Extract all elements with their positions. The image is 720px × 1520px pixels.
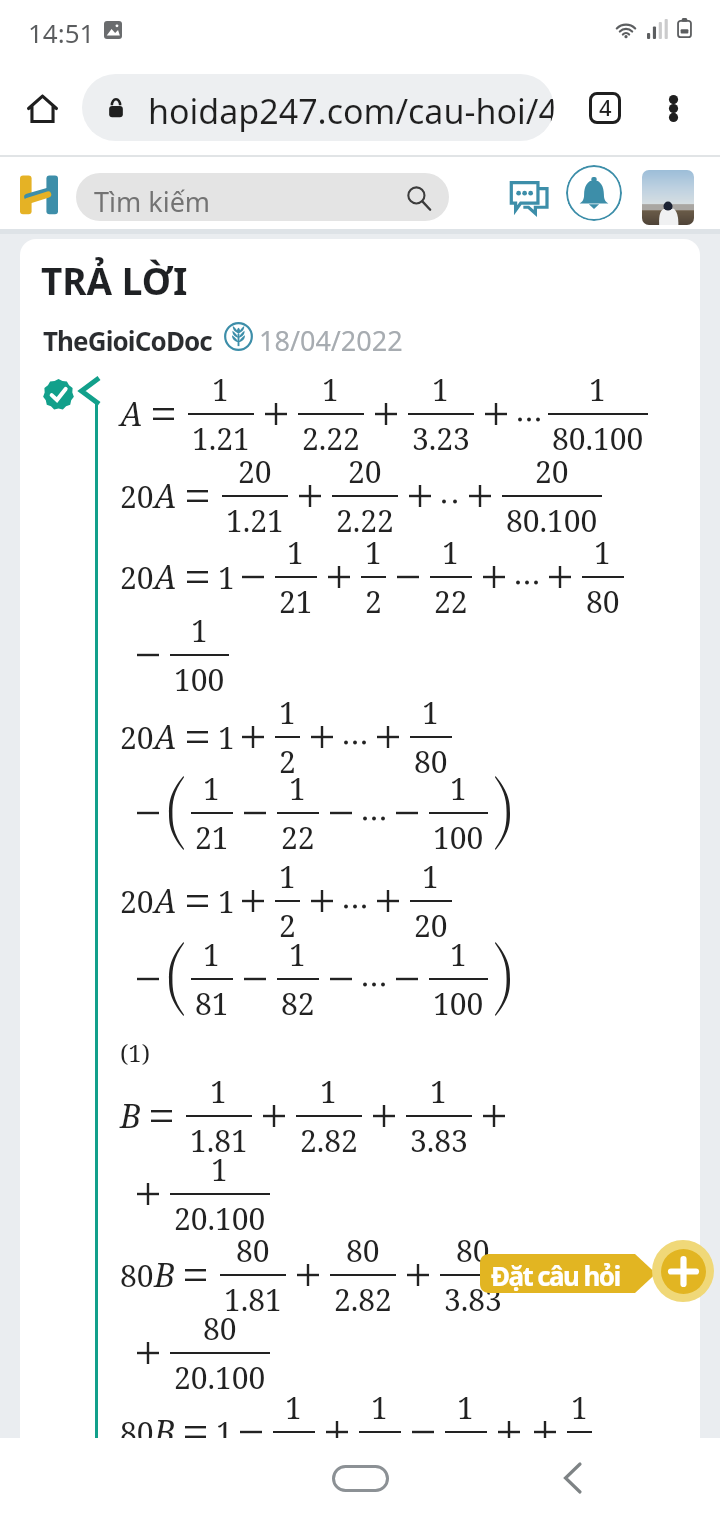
staticText: 1 (430, 1071, 447, 1112)
staticText: 1 (218, 717, 235, 758)
staticText: 100 (433, 983, 484, 1024)
staticText: TRẢ LỜI (41, 255, 188, 305)
staticText: 1 (289, 934, 306, 975)
staticText: 80.100 (552, 418, 644, 459)
staticText: 1.21 (192, 418, 250, 459)
staticText: 20.100 (174, 1357, 266, 1398)
button[interactable]: Ask a question (652, 1240, 714, 1302)
staticText: 82 (281, 983, 315, 1024)
staticText: 100 (433, 817, 484, 858)
staticText: 2 (365, 581, 382, 622)
staticText: 1 (218, 557, 235, 598)
button[interactable]: Hoidap247 home (20, 173, 58, 216)
staticText: 80 (456, 1230, 490, 1271)
staticText: 4 (599, 92, 612, 122)
staticText: 20 (120, 476, 154, 517)
staticText: 80 (414, 741, 448, 782)
button[interactable]: hoidap247.com/cau-hoi/4 (82, 74, 554, 141)
staticText: 21 (279, 581, 313, 622)
staticText: 80 (120, 1255, 154, 1296)
staticText: 2 (279, 741, 296, 782)
staticText: 20.100 (174, 1198, 266, 1239)
staticText: 18/04/2022 (259, 322, 403, 359)
staticText: 80 (120, 1412, 154, 1453)
staticText: 14:51 (28, 15, 95, 50)
staticText: 20 (120, 557, 154, 598)
staticText: 3.83 (410, 1120, 468, 1161)
staticText: 1 (289, 768, 306, 809)
staticText: A (154, 715, 177, 759)
staticText: 1 (216, 1412, 233, 1453)
staticText: 2.82 (300, 1120, 358, 1161)
staticText: 1 (422, 856, 439, 897)
staticText: 1 (210, 1071, 227, 1112)
staticText: 1 (432, 369, 449, 410)
button[interactable]: Home (320, 1453, 401, 1504)
staticText: 1 (279, 692, 296, 733)
staticText: Tìm kiếm (94, 183, 211, 220)
staticText: 3.83 (444, 1279, 502, 1320)
staticText: 1 (287, 532, 304, 573)
staticText: 20 (238, 451, 272, 492)
staticText: 1 (285, 1387, 302, 1428)
button[interactable]: Messages (499, 168, 557, 226)
staticText: 2.22 (336, 500, 394, 541)
staticText: 22 (281, 817, 315, 858)
button[interactable]: Home (16, 82, 68, 134)
button[interactable]: Profile (642, 170, 694, 225)
staticText: 1 (203, 934, 220, 975)
staticText: 81 (195, 983, 229, 1024)
staticText: 2.82 (334, 1279, 392, 1320)
staticText: 1 (211, 1149, 228, 1190)
staticText: A (154, 555, 177, 599)
staticText: A (154, 474, 177, 518)
staticText: 1 (450, 768, 467, 809)
staticText: 1 (191, 610, 208, 651)
staticText: 1 (203, 768, 220, 809)
staticText: 80.100 (506, 500, 598, 541)
staticText: 100 (174, 659, 225, 700)
staticText: 80 (203, 1308, 237, 1349)
staticText: (1) (120, 1036, 151, 1069)
staticText: 22 (434, 581, 468, 622)
staticText: 1 (322, 369, 339, 410)
button[interactable]: More options (646, 81, 700, 135)
staticText: B (154, 1253, 175, 1297)
staticText: 3.23 (412, 418, 470, 459)
button[interactable]: Đặt câu hỏi (480, 1254, 656, 1293)
staticText: 1 (371, 1387, 388, 1428)
staticText: 20 (414, 905, 448, 946)
staticText: 21 (195, 817, 229, 858)
staticText: A (154, 879, 177, 923)
staticText: 20 (120, 717, 154, 758)
staticText: B (154, 1410, 175, 1454)
staticText: 1.21 (226, 500, 284, 541)
staticText: A (120, 392, 143, 436)
staticText: 20 (348, 451, 382, 492)
staticText: 20 (535, 451, 569, 492)
button[interactable]: Notifications (566, 165, 622, 221)
staticText: 1 (457, 1387, 474, 1428)
button[interactable]: Open tabs (576, 79, 634, 137)
staticText: B (120, 1094, 141, 1138)
staticText: 1.81 (224, 1279, 282, 1320)
staticText: 2 (279, 905, 296, 946)
button[interactable]: Back (546, 1452, 598, 1504)
staticText: 1 (442, 532, 459, 573)
staticText: hoidap247.com/cau-hoi/4 (148, 88, 554, 134)
staticText: 80 (236, 1230, 270, 1271)
staticText: 1.81 (190, 1120, 248, 1161)
staticText: Đặt câu hỏi (491, 1258, 620, 1293)
staticText: 1 (365, 532, 382, 573)
staticText: 80 (586, 581, 620, 622)
staticText: 2.22 (302, 418, 360, 459)
staticText: 1 (450, 934, 467, 975)
button[interactable]: Tìm kiếm (76, 173, 449, 221)
staticText: 1 (279, 856, 296, 897)
staticText: 82 (363, 1436, 397, 1477)
staticText: 20 (120, 881, 154, 922)
staticText: 8 (571, 1436, 588, 1477)
staticText: TheGioiCoDoc (43, 323, 212, 358)
